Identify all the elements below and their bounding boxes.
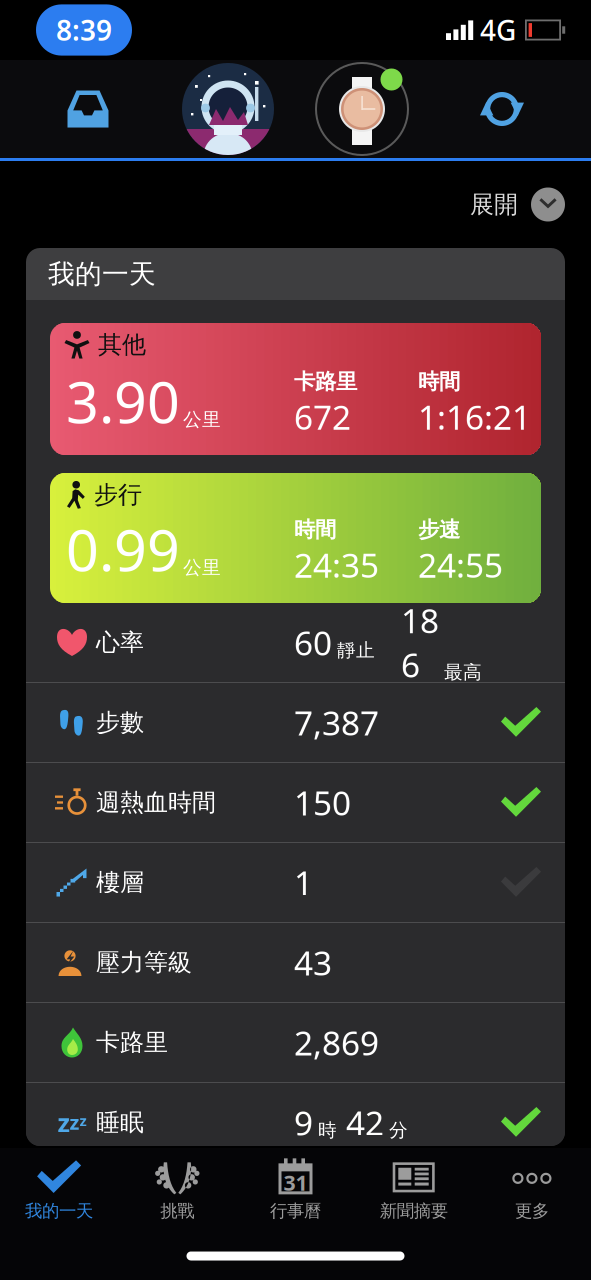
staticText: 1:16:21 (418, 395, 531, 439)
staticText: 最高 (444, 661, 482, 684)
button[interactable]: 挑戰 (118, 1148, 236, 1232)
staticText: 靜止 (337, 639, 375, 662)
button[interactable]: 壓力等級 (26, 923, 565, 1002)
staticText: 9 (294, 1100, 313, 1145)
staticText: 7,387 (294, 700, 379, 745)
button[interactable]: 我的一天 (0, 1148, 118, 1232)
staticText: 行事曆 (270, 1200, 321, 1222)
button[interactable]: Sync (444, 60, 560, 158)
button[interactable]: 新聞摘要 (355, 1148, 473, 1232)
staticText: z (69, 1109, 79, 1135)
staticText: 0.99 (66, 511, 180, 587)
staticText: 24:35 (294, 543, 379, 587)
staticText: 3.90 (66, 363, 180, 439)
staticText: 時間 (294, 516, 336, 543)
button[interactable]: 心率 (26, 603, 565, 682)
button[interactable]: Inbox (0, 60, 176, 158)
staticText: 公里 (183, 408, 221, 431)
staticText: z (57, 1106, 69, 1139)
staticText: 時 (318, 1119, 337, 1142)
staticText: 更多 (515, 1200, 549, 1222)
button[interactable]: Profile (176, 60, 280, 158)
button[interactable]: Paired device (280, 60, 444, 158)
button[interactable]: 展開 (470, 171, 591, 237)
staticText: 1 (294, 860, 313, 905)
staticText: 新聞摘要 (380, 1200, 448, 1222)
staticText: 公里 (183, 556, 221, 579)
staticText: 150 (294, 780, 351, 825)
staticText: 挑戰 (160, 1200, 194, 1222)
staticText: 43 (294, 940, 332, 985)
staticText: 186 (401, 598, 439, 687)
staticText: 672 (294, 395, 351, 439)
staticText: 步數 (96, 708, 144, 737)
button[interactable]: 更多 (473, 1148, 591, 1232)
staticText: 展開 (470, 190, 518, 219)
staticText: 卡路里 (96, 1028, 168, 1057)
staticText: 其他 (98, 330, 146, 359)
staticText: 睡眠 (96, 1108, 144, 1137)
button[interactable]: 樓層 (26, 843, 565, 922)
staticText: 樓層 (96, 868, 144, 897)
staticText: 24:55 (418, 543, 503, 587)
button[interactable]: z (26, 1083, 565, 1162)
staticText: 42 (346, 1100, 384, 1145)
staticText: 2,869 (294, 1020, 379, 1065)
staticText: 60 (294, 620, 332, 665)
staticText: 分 (389, 1119, 408, 1142)
staticText: 我的一天 (25, 1200, 93, 1222)
staticText: 壓力等級 (96, 948, 192, 977)
staticText: 4G (480, 11, 516, 49)
staticText: 步行 (94, 480, 142, 509)
staticText: 週熱血時間 (96, 788, 216, 817)
staticText: 時間 (418, 368, 460, 395)
staticText: 我的一天 (48, 258, 156, 290)
staticText: 卡路里 (294, 368, 357, 395)
staticText: 步速 (418, 516, 460, 543)
staticText: z (79, 1111, 86, 1130)
button[interactable]: 31 (236, 1148, 355, 1232)
button[interactable]: 步數 (26, 683, 565, 762)
staticText: 心率 (96, 628, 144, 657)
staticText: 8:39 (56, 11, 112, 49)
staticText: 31 (283, 1168, 307, 1196)
button[interactable]: 體重 (26, 1163, 565, 1242)
button[interactable]: 卡路里 (26, 1003, 565, 1082)
button[interactable]: 週熱血時間 (26, 763, 565, 842)
